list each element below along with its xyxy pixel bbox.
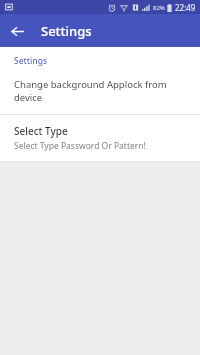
staticText: 22:49: [175, 2, 196, 13]
staticText: Select Type: [14, 124, 68, 138]
staticText: Select Type Password Or Pattern!: [14, 140, 146, 152]
staticText: Change background Applock from device: [14, 78, 186, 104]
staticText: Settings: [41, 22, 92, 40]
button[interactable]: Back: [6, 20, 28, 42]
button[interactable]: Select Type: [0, 115, 200, 161]
staticText: 82%: [153, 4, 165, 12]
button[interactable]: Change background Applock from device: [0, 75, 200, 114]
staticText: Settings: [14, 55, 48, 67]
